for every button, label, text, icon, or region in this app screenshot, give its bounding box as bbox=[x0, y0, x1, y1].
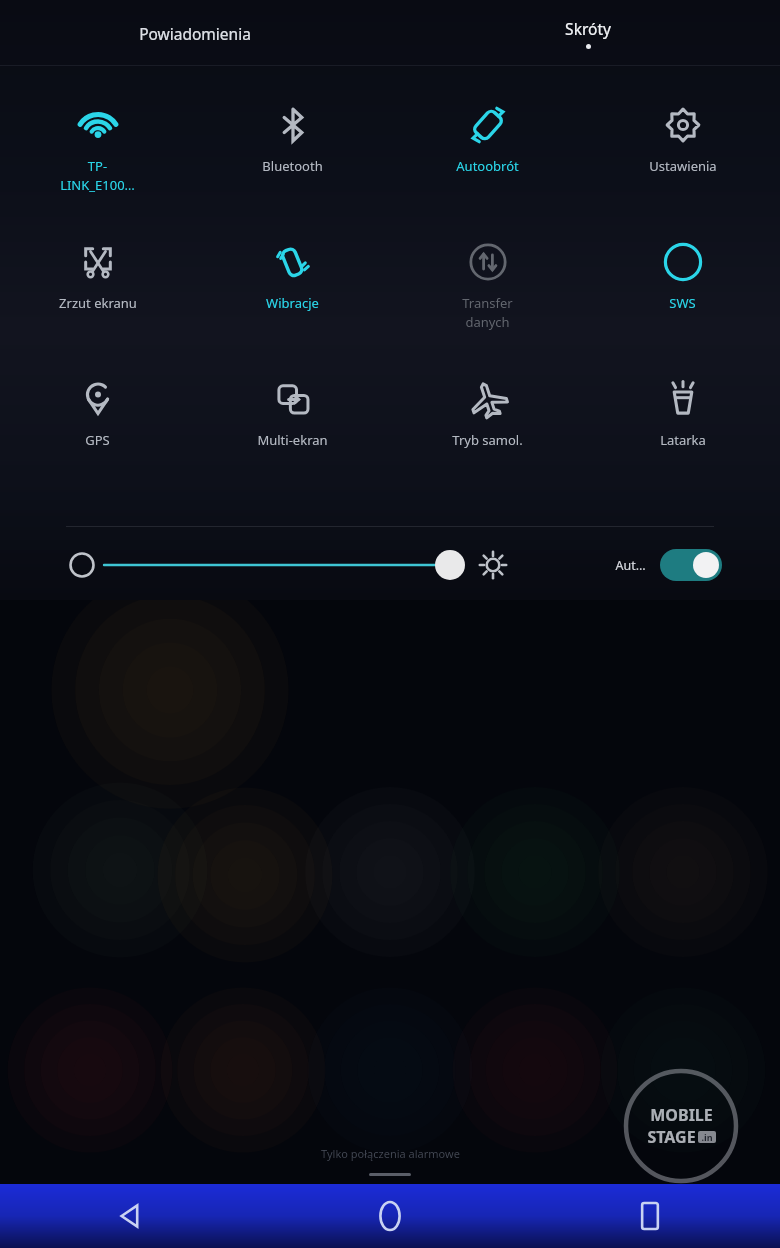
staticText: GPS bbox=[85, 431, 110, 449]
button[interactable]: Latarka bbox=[585, 377, 780, 514]
button[interactable]: Skróty bbox=[495, 0, 681, 66]
button[interactable]: SWS bbox=[585, 240, 780, 377]
button[interactable]: Recent apps bbox=[520, 1184, 780, 1248]
staticText: MOBILE bbox=[650, 1104, 713, 1126]
staticText: Latarka bbox=[660, 431, 706, 449]
staticText: Skróty bbox=[565, 18, 611, 39]
staticText: .in bbox=[701, 1131, 713, 1143]
staticText: Tylko połączenia alarmowe bbox=[321, 1146, 460, 1161]
staticText: Powiadomienia bbox=[139, 23, 251, 44]
staticText: Transfer danych bbox=[462, 294, 513, 331]
other: Maximum brightness bbox=[478, 550, 508, 580]
staticText: Autoobrót bbox=[456, 157, 519, 175]
button[interactable]: Zrzut ekranu bbox=[0, 240, 195, 377]
staticText: Zrzut ekranu bbox=[59, 294, 137, 312]
button[interactable]: Powiadomienia bbox=[100, 0, 290, 66]
staticText: TP- LINK_E100… bbox=[60, 157, 135, 194]
staticText: Tryb samol. bbox=[452, 431, 523, 449]
button[interactable]: Aut… bbox=[615, 549, 722, 581]
button[interactable]: Wibracje bbox=[195, 240, 390, 377]
button[interactable]: Transfer danych bbox=[390, 240, 585, 377]
button[interactable]: Ustawienia bbox=[585, 103, 780, 240]
staticText: STAGE bbox=[647, 1126, 696, 1148]
staticText: Ustawienia bbox=[649, 157, 717, 175]
staticText: Bluetooth bbox=[262, 157, 323, 175]
button[interactable] bbox=[96, 545, 468, 585]
other: Minimum brightness bbox=[68, 551, 96, 579]
button[interactable]: Tryb samol. bbox=[390, 377, 585, 514]
button[interactable]: Multi-ekran bbox=[195, 377, 390, 514]
button[interactable]: Back bbox=[0, 1184, 260, 1248]
staticText: SWS bbox=[669, 294, 696, 312]
staticText: Aut… bbox=[615, 557, 646, 574]
button[interactable]: Bluetooth bbox=[195, 103, 390, 240]
button[interactable]: Autoobrót bbox=[390, 103, 585, 240]
button[interactable]: TP- LINK_E100… bbox=[0, 103, 195, 240]
button[interactable]: GPS bbox=[0, 377, 195, 514]
button[interactable]: Home bbox=[260, 1184, 520, 1248]
staticText: Multi-ekran bbox=[257, 431, 328, 449]
staticText: Wibracje bbox=[266, 294, 319, 312]
